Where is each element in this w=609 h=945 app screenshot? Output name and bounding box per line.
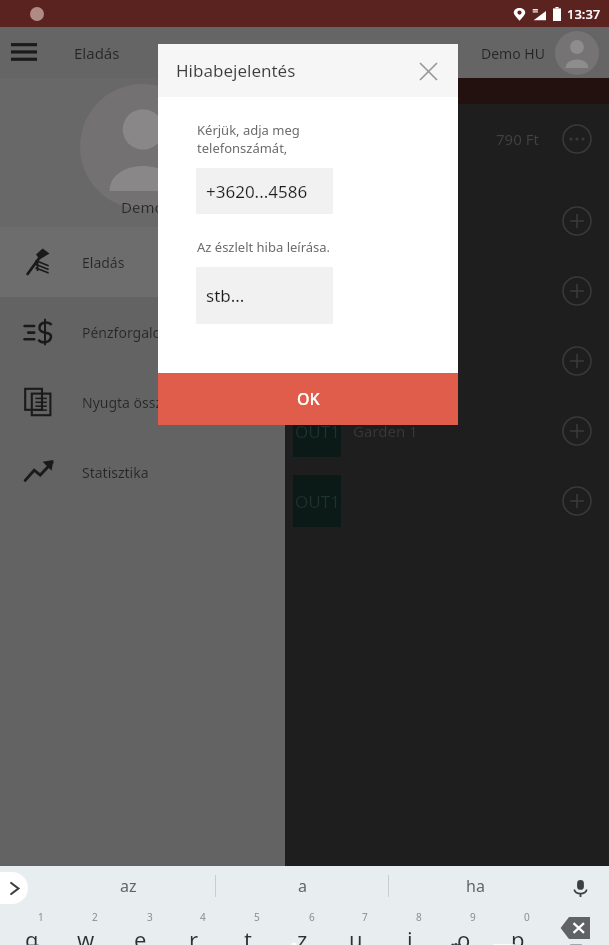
- button[interactable]: Eladás: [0, 227, 285, 297]
- staticText: 3: [147, 910, 153, 924]
- button[interactable]: Add: [555, 479, 599, 523]
- staticText: q: [25, 924, 39, 945]
- button[interactable]: ha: [389, 866, 561, 906]
- button[interactable]: Account: [555, 31, 599, 75]
- button[interactable]: Statisztika: [0, 437, 285, 507]
- button[interactable]: Add: [555, 409, 599, 453]
- staticText: OUT1: [295, 280, 340, 303]
- staticText: a: [298, 875, 307, 897]
- button[interactable]: Expand toolbar: [0, 872, 28, 904]
- staticText: stb...: [206, 284, 245, 307]
- staticText: Nyugta összesítő: [82, 393, 194, 412]
- staticText: OK: [297, 388, 320, 410]
- button[interactable]: More options: [555, 117, 599, 161]
- button[interactable]: stb...: [196, 267, 333, 324]
- button[interactable]: OUT1: [285, 326, 609, 396]
- staticText: u: [349, 924, 363, 945]
- button[interactable]: 0: [491, 910, 545, 945]
- staticText: Kérjük, adja meg telefonszámát,: [197, 121, 300, 157]
- staticText: Demo HU: [481, 44, 545, 63]
- staticText: w: [77, 924, 95, 945]
- staticText: 6: [309, 910, 315, 924]
- button[interactable]: Open navigation drawer: [0, 29, 48, 77]
- button[interactable]: a: [216, 866, 388, 906]
- staticText: Az észlelt hiba leírása.: [197, 238, 331, 256]
- button[interactable]: OUT1: [285, 186, 609, 256]
- staticText: 2: [92, 910, 98, 924]
- staticText: t: [244, 924, 252, 945]
- button[interactable]: 4: [167, 910, 221, 945]
- button[interactable]: 9: [437, 910, 491, 945]
- button[interactable]: Backspace: [545, 910, 605, 945]
- staticText: p: [511, 924, 525, 945]
- staticText: Demo: [121, 197, 164, 217]
- button[interactable]: OK: [158, 373, 458, 425]
- staticText: Pénzforgalom: [82, 323, 175, 342]
- staticText: e: [134, 924, 147, 945]
- staticText: Eladás: [74, 43, 120, 63]
- staticText: 7: [362, 910, 368, 924]
- staticText: Hibabejelentés: [176, 59, 296, 82]
- staticText: Garden 1: [353, 421, 418, 441]
- staticText: z: [297, 924, 308, 945]
- button[interactable]: 7: [329, 910, 383, 945]
- staticText: i: [407, 924, 413, 945]
- staticText: o: [457, 924, 471, 945]
- button[interactable]: 6: [275, 910, 329, 945]
- staticText: 4: [200, 910, 206, 924]
- staticText: Statisztika: [82, 463, 149, 482]
- button[interactable]: 2: [59, 910, 113, 945]
- button[interactable]: 790 Ft: [285, 104, 609, 174]
- staticText: +3620...4586: [206, 180, 308, 203]
- button[interactable]: OUT1: [285, 256, 609, 326]
- staticText: 8: [416, 910, 422, 924]
- staticText: OUT1: [295, 490, 340, 513]
- button[interactable]: Add: [555, 339, 599, 383]
- button[interactable]: Add: [555, 269, 599, 313]
- staticText: 1: [38, 910, 44, 924]
- button[interactable]: 5: [221, 910, 275, 945]
- button[interactable]: 3: [113, 910, 167, 945]
- button[interactable]: Pénzforgalom: [0, 297, 285, 367]
- staticText: r: [189, 924, 199, 945]
- staticText: az: [120, 875, 137, 897]
- staticText: 5: [254, 910, 260, 924]
- button[interactable]: Nyugta összesítő: [0, 367, 285, 437]
- staticText: OUT1: [295, 420, 340, 443]
- staticText: 790 Ft: [496, 129, 539, 149]
- button[interactable]: Close: [408, 51, 448, 91]
- button[interactable]: az: [42, 866, 215, 906]
- button[interactable]: OUT1: [285, 466, 609, 536]
- staticText: Eladás: [82, 253, 125, 272]
- staticText: ha: [466, 875, 485, 897]
- staticText: 0: [524, 910, 530, 924]
- button[interactable]: Add: [555, 199, 599, 243]
- button[interactable]: +3620...4586: [196, 168, 333, 214]
- button[interactable]: 8: [383, 910, 437, 945]
- staticText: 9: [470, 910, 476, 924]
- staticText: 13:37: [567, 5, 601, 23]
- button[interactable]: 1: [4, 910, 59, 945]
- button[interactable]: Voice input: [563, 871, 597, 905]
- staticText: OUT1: [295, 210, 340, 233]
- button[interactable]: OUT1: [285, 396, 609, 466]
